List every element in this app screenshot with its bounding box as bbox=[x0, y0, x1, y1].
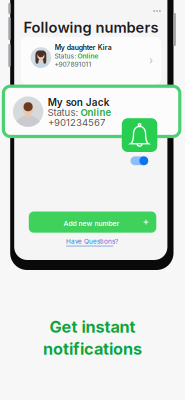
staticText: Following numbers bbox=[24, 18, 159, 36]
staticText: Add new number bbox=[63, 219, 119, 228]
staticText: Status: bbox=[54, 52, 76, 60]
button[interactable]: Notifications bbox=[122, 118, 157, 152]
button[interactable]: My daughter Kira bbox=[21, 37, 161, 84]
staticText: notifications bbox=[43, 339, 142, 359]
staticText: Get instant bbox=[49, 317, 135, 337]
staticText: +901234567 bbox=[48, 117, 105, 128]
button[interactable]: Have Questions? bbox=[68, 237, 116, 246]
staticText: Online bbox=[80, 107, 111, 118]
staticText: Status: bbox=[48, 107, 79, 118]
staticText: +907891011 bbox=[55, 60, 92, 68]
staticText: Online bbox=[78, 52, 99, 60]
staticText: My daughter Kira bbox=[55, 43, 112, 52]
button[interactable]: Add new number bbox=[29, 211, 156, 233]
button[interactable]: Notifications toggle bbox=[130, 156, 148, 165]
button[interactable]: More options bbox=[150, 7, 164, 15]
staticText: My son Jack bbox=[48, 96, 110, 108]
staticText: Have Questions? bbox=[66, 237, 118, 245]
button[interactable]: My son Jack bbox=[3, 86, 180, 136]
